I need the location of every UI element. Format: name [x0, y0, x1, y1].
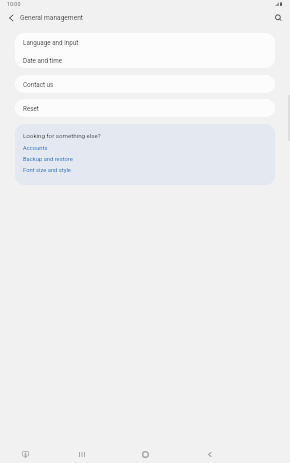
button[interactable]: Recent apps: [73, 445, 91, 463]
staticText: Contact us: [23, 81, 54, 88]
staticText: Date and time: [23, 57, 62, 64]
button[interactable]: Language and input: [15, 33, 275, 52]
button[interactable]: Contact us: [15, 75, 275, 93]
staticText: Backup and restore: [23, 156, 73, 163]
staticText: Font size and style: [23, 167, 71, 174]
button[interactable]: Backup and restore: [23, 156, 73, 163]
button[interactable]: Date and time: [15, 52, 275, 68]
button[interactable]: Accounts: [23, 145, 48, 152]
button[interactable]: Reset: [15, 99, 275, 117]
staticText: Reset: [23, 105, 39, 112]
button[interactable]: Home: [136, 445, 154, 463]
staticText: Language and input: [23, 39, 79, 46]
button[interactable]: Back: [200, 445, 218, 463]
button[interactable]: Search: [268, 7, 288, 27]
staticText: General management: [20, 14, 83, 22]
staticText: Looking for something else?: [23, 132, 101, 139]
staticText: 10:00: [7, 1, 21, 7]
staticText: Accounts: [23, 145, 48, 152]
button[interactable]: Navigate up: [1, 8, 21, 28]
button[interactable]: Hide keyboard: [16, 445, 34, 463]
button[interactable]: Font size and style: [23, 167, 71, 174]
